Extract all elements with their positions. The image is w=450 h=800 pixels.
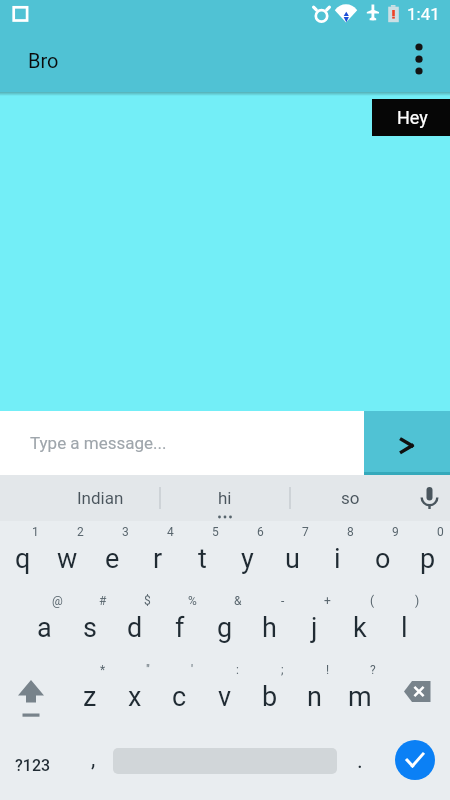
staticText: 2 bbox=[77, 525, 84, 539]
button[interactable]: Indian bbox=[40, 475, 160, 521]
button[interactable]: - bbox=[247, 591, 292, 659]
staticText: y bbox=[241, 543, 254, 575]
button[interactable]: 1 bbox=[0, 522, 45, 590]
button[interactable]: , bbox=[71, 729, 116, 797]
button[interactable]: 4 bbox=[135, 522, 180, 590]
button[interactable]: ! bbox=[292, 660, 337, 728]
button[interactable] bbox=[404, 36, 430, 84]
button[interactable]: 6 bbox=[225, 522, 270, 590]
staticText: ?123 bbox=[15, 756, 51, 775]
staticText: . bbox=[357, 748, 363, 774]
button[interactable]: @ bbox=[22, 591, 67, 659]
staticText: " bbox=[146, 663, 150, 677]
button[interactable] bbox=[395, 740, 435, 780]
staticText: h bbox=[262, 612, 277, 644]
staticText: 4 bbox=[167, 525, 174, 539]
staticText: p bbox=[420, 543, 436, 575]
staticText: k bbox=[353, 612, 367, 644]
button[interactable] bbox=[388, 660, 450, 728]
button[interactable]: ? bbox=[337, 660, 382, 728]
staticText: j bbox=[311, 612, 318, 644]
staticText: % bbox=[188, 594, 197, 608]
staticText: so bbox=[341, 488, 360, 508]
staticText: i bbox=[334, 543, 341, 575]
staticText: 9 bbox=[392, 525, 399, 539]
staticText: 1 bbox=[32, 525, 39, 539]
button[interactable]: ; bbox=[247, 660, 292, 728]
staticText: , bbox=[91, 746, 96, 772]
button[interactable]: ' bbox=[157, 660, 202, 728]
button[interactable]: hi bbox=[160, 475, 290, 521]
staticText: @ bbox=[52, 594, 63, 608]
staticText: u bbox=[285, 543, 300, 575]
staticText: o bbox=[375, 543, 391, 575]
staticText: l bbox=[401, 612, 408, 644]
staticText: & bbox=[234, 594, 242, 608]
button[interactable]: ?123 bbox=[3, 729, 63, 797]
staticText: 6 bbox=[257, 525, 264, 539]
staticText: b bbox=[262, 681, 278, 713]
button[interactable]: # bbox=[67, 591, 112, 659]
staticText: + bbox=[324, 594, 331, 608]
staticText: a bbox=[37, 612, 52, 644]
staticText: m bbox=[348, 681, 372, 713]
staticText: r bbox=[153, 543, 163, 575]
staticText: Type a message... bbox=[30, 433, 167, 453]
staticText: ' bbox=[191, 663, 194, 677]
button[interactable]: * bbox=[67, 660, 112, 728]
staticText: ( bbox=[370, 594, 375, 608]
button[interactable]: Type a message... bbox=[0, 411, 364, 475]
button[interactable]: : bbox=[202, 660, 247, 728]
staticText: 5 bbox=[212, 525, 219, 539]
button[interactable]: ( bbox=[337, 591, 382, 659]
staticText: Hey bbox=[397, 107, 428, 128]
button[interactable]: 2 bbox=[45, 522, 90, 590]
button[interactable]: & bbox=[202, 591, 247, 659]
staticText: f bbox=[175, 612, 185, 644]
staticText: g bbox=[217, 612, 233, 644]
staticText: q bbox=[15, 543, 31, 575]
button[interactable]: % bbox=[157, 591, 202, 659]
staticText: 0 bbox=[437, 525, 444, 539]
button[interactable] bbox=[364, 411, 450, 475]
button[interactable]: + bbox=[292, 591, 337, 659]
staticText: 3 bbox=[122, 525, 129, 539]
staticText: ! bbox=[326, 663, 330, 677]
button[interactable]: " bbox=[112, 660, 157, 728]
button[interactable]: 5 bbox=[180, 522, 225, 590]
staticText: # bbox=[99, 594, 107, 608]
staticText: $ bbox=[144, 594, 151, 608]
button[interactable]: so bbox=[290, 475, 410, 521]
staticText: : bbox=[236, 663, 239, 677]
staticText: * bbox=[100, 663, 106, 677]
staticText: hi bbox=[218, 488, 232, 508]
staticText: 1:41 bbox=[407, 4, 440, 24]
button[interactable]: ) bbox=[382, 591, 427, 659]
staticText: w bbox=[57, 543, 78, 575]
staticText: ? bbox=[370, 663, 376, 677]
button[interactable]: 0 bbox=[405, 522, 450, 590]
staticText: n bbox=[307, 681, 322, 713]
staticText: Bro bbox=[28, 49, 59, 72]
staticText: - bbox=[281, 594, 285, 608]
button[interactable]: . bbox=[338, 729, 382, 797]
staticText: ; bbox=[281, 663, 284, 677]
staticText: e bbox=[105, 543, 120, 575]
staticText: 7 bbox=[302, 525, 309, 539]
button[interactable]: 9 bbox=[360, 522, 405, 590]
button[interactable]: $ bbox=[112, 591, 157, 659]
staticText: t bbox=[198, 543, 207, 575]
staticText: s bbox=[83, 612, 97, 644]
staticText: z bbox=[83, 681, 97, 713]
staticText: v bbox=[218, 681, 232, 713]
button[interactable]: 7 bbox=[270, 522, 315, 590]
staticText: d bbox=[127, 612, 143, 644]
staticText: ) bbox=[415, 594, 420, 608]
button[interactable]: Hey bbox=[372, 99, 450, 136]
staticText: x bbox=[128, 681, 142, 713]
button[interactable]: 8 bbox=[315, 522, 360, 590]
button[interactable] bbox=[0, 660, 62, 728]
staticText: c bbox=[172, 681, 187, 713]
button[interactable]: 3 bbox=[90, 522, 135, 590]
